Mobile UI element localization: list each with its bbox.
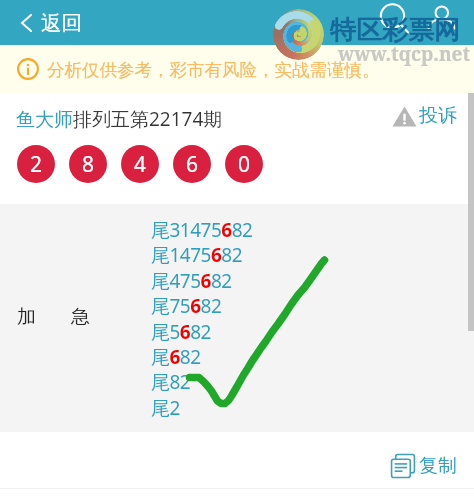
staticText: 0	[238, 150, 251, 179]
staticText: 尾82	[151, 369, 191, 395]
staticText: 尾31475682	[151, 217, 253, 243]
button[interactable]: 复制	[390, 453, 457, 479]
staticText: 8	[82, 150, 95, 179]
staticText: 4	[134, 150, 147, 179]
staticText: 2	[30, 150, 43, 179]
staticText: 急	[71, 305, 90, 329]
button[interactable]: 返回	[0, 5, 94, 41]
staticText: 6	[186, 150, 199, 179]
button[interactable]: Profile	[426, 0, 458, 32]
staticText: www.tqcp.net	[338, 41, 471, 67]
staticText: 返回	[41, 10, 82, 36]
staticText: 复制	[419, 454, 457, 478]
staticText: 特区彩票网	[330, 14, 460, 47]
staticText: 分析仅供参考，彩市有风险，实战需谨慎。	[47, 59, 380, 81]
staticText: 尾2	[151, 395, 180, 421]
staticText: 加	[17, 305, 36, 329]
button[interactable]: Search	[376, 0, 412, 36]
staticText: 尾682	[151, 344, 201, 370]
staticText: 鱼大师排列五第22174期	[16, 106, 223, 132]
button[interactable]: 投诉	[392, 104, 474, 128]
staticText: 投诉	[419, 104, 457, 128]
staticText: 尾475682	[151, 268, 232, 294]
staticText: 尾5682	[151, 319, 211, 345]
staticText: 尾1475682	[151, 242, 243, 268]
staticText: 尾75682	[151, 293, 222, 319]
